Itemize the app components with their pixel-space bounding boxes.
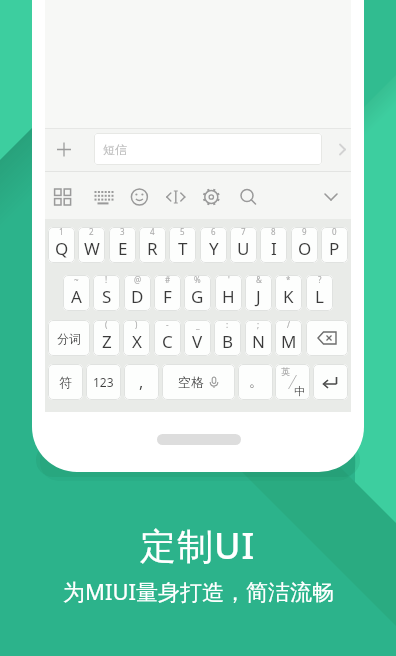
staticText: 0 <box>332 227 337 237</box>
staticText: L <box>315 285 324 308</box>
staticText: T <box>178 237 188 260</box>
button[interactable]: ; <box>245 320 272 356</box>
button[interactable] <box>313 364 348 400</box>
staticText: @ <box>134 275 142 285</box>
staticText: - <box>166 320 169 330</box>
button[interactable]: 9 <box>291 227 318 263</box>
staticText: ) <box>135 320 138 330</box>
button[interactable]: 1 <box>48 227 75 263</box>
staticText: 3 <box>120 227 125 237</box>
button[interactable]: / <box>275 320 302 356</box>
staticText: ( <box>105 320 108 330</box>
staticText: I <box>271 237 277 260</box>
staticText: K <box>283 285 294 308</box>
button[interactable]: 短信 <box>94 133 322 165</box>
button[interactable]: & <box>245 275 272 311</box>
staticText: 9 <box>302 227 307 237</box>
button[interactable]: 空格 <box>162 364 235 400</box>
button[interactable]: 2 <box>78 227 105 263</box>
staticText: # <box>165 275 171 285</box>
button[interactable]: 0 <box>321 227 348 263</box>
staticText: 2 <box>89 227 94 237</box>
button[interactable]: 6 <box>200 227 227 263</box>
staticText: Y <box>209 237 219 260</box>
staticText: R <box>147 237 158 260</box>
staticText: 英 <box>281 366 290 377</box>
button[interactable]: , <box>124 364 159 400</box>
staticText: N <box>252 330 265 353</box>
staticText: Q <box>55 237 69 260</box>
staticText: S <box>102 285 112 308</box>
button[interactable]: ) <box>123 320 150 356</box>
staticText: / <box>287 320 290 330</box>
button[interactable]: ? <box>306 275 333 311</box>
staticText: G <box>191 285 204 308</box>
staticText: _ <box>196 320 200 330</box>
button[interactable]: 。 <box>238 364 273 400</box>
staticText: % <box>194 275 201 285</box>
button[interactable]: 分词 <box>48 320 90 356</box>
staticText: 123 <box>93 374 114 390</box>
button[interactable]: 8 <box>260 227 287 263</box>
staticText: W <box>84 237 100 260</box>
staticText: 定制UI <box>140 521 256 570</box>
button[interactable] <box>306 320 348 356</box>
staticText: 符 <box>59 374 72 390</box>
button[interactable]: ! <box>93 275 120 311</box>
button[interactable]: ~ <box>63 275 90 311</box>
staticText: B <box>222 330 234 353</box>
button[interactable]: ' <box>215 275 242 311</box>
staticText: 空格 <box>178 374 204 390</box>
staticText: 分词 <box>57 331 81 346</box>
staticText: , <box>139 371 144 393</box>
staticText: ' <box>228 275 230 285</box>
button[interactable]: 5 <box>169 227 196 263</box>
staticText: 5 <box>180 227 185 237</box>
staticText: O <box>298 237 312 260</box>
staticText: U <box>237 237 250 260</box>
button[interactable]: % <box>184 275 211 311</box>
staticText: * <box>286 275 291 285</box>
staticText: F <box>163 285 172 308</box>
button[interactable]: 3 <box>109 227 136 263</box>
staticText: ! <box>105 275 108 285</box>
staticText: ; <box>257 320 260 330</box>
staticText: D <box>131 285 144 308</box>
button[interactable]: @ <box>124 275 151 311</box>
staticText: 中 <box>294 384 305 398</box>
staticText: J <box>256 285 261 308</box>
staticText: P <box>329 237 340 260</box>
button[interactable]: 英 <box>275 364 310 400</box>
staticText: 。 <box>249 373 263 391</box>
button[interactable]: ( <box>93 320 120 356</box>
button[interactable]: # <box>154 275 181 311</box>
staticText: V <box>192 330 203 353</box>
button[interactable]: 123 <box>86 364 121 400</box>
staticText: E <box>118 237 128 260</box>
staticText: 4 <box>150 227 155 237</box>
staticText: & <box>256 275 262 285</box>
button[interactable] <box>45 171 351 219</box>
staticText: 1 <box>59 227 64 237</box>
button[interactable]: : <box>214 320 241 356</box>
staticText: ? <box>318 275 322 285</box>
button[interactable]: 4 <box>139 227 166 263</box>
button[interactable]: * <box>275 275 302 311</box>
button[interactable]: 符 <box>48 364 83 400</box>
button[interactable]: 7 <box>230 227 257 263</box>
staticText: X <box>132 330 142 353</box>
staticText: 8 <box>271 227 276 237</box>
staticText: A <box>71 285 82 308</box>
button[interactable]: _ <box>184 320 211 356</box>
staticText: ~ <box>74 275 79 285</box>
staticText: H <box>222 285 235 308</box>
button[interactable]: - <box>154 320 181 356</box>
staticText: C <box>162 330 173 353</box>
staticText: 6 <box>211 227 216 237</box>
staticText: M <box>281 330 297 353</box>
staticText: 为MIUI量身打造，简洁流畅 <box>63 576 334 606</box>
staticText: 短信 <box>103 142 127 157</box>
staticText: Z <box>102 330 112 353</box>
staticText: 7 <box>241 227 246 237</box>
staticText: : <box>226 320 229 330</box>
